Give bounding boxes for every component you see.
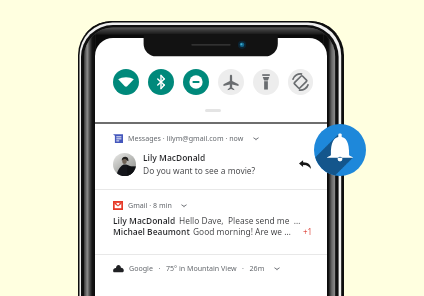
staticText: Do you want to see a movie? xyxy=(143,165,256,176)
button[interactable]: Gmail · 8 min xyxy=(95,190,327,253)
button[interactable]: Do not disturb xyxy=(183,69,209,95)
button[interactable]: Google · 75° in Mountain View · 26m xyxy=(95,255,327,293)
staticText: Lily MacDonald xyxy=(113,215,176,226)
staticText: Good morning! Are we … xyxy=(193,226,291,237)
button[interactable]: Bluetooth xyxy=(148,69,174,95)
button[interactable]: Messages · lilym@gmail.com · now xyxy=(95,124,327,175)
staticText: Michael Beaumont xyxy=(113,226,190,237)
button[interactable]: Notifications xyxy=(314,124,366,176)
staticText: +1 xyxy=(303,226,313,237)
button[interactable]: Auto rotate xyxy=(288,69,313,95)
staticText: Gmail · 8 min xyxy=(128,200,172,210)
button[interactable]: Airplane mode xyxy=(218,69,244,95)
staticText: Messages · lilym@gmail.com · now xyxy=(128,133,244,143)
staticText: Google · 75° in Mountain View · 26m xyxy=(129,263,265,273)
staticText: Hello Dave, Please send me … xyxy=(179,215,301,226)
button[interactable]: Flashlight xyxy=(253,69,279,95)
staticText: Lily MacDonald xyxy=(143,152,206,163)
button[interactable]: Reply xyxy=(297,156,313,172)
button[interactable]: Wi-Fi xyxy=(113,69,139,95)
